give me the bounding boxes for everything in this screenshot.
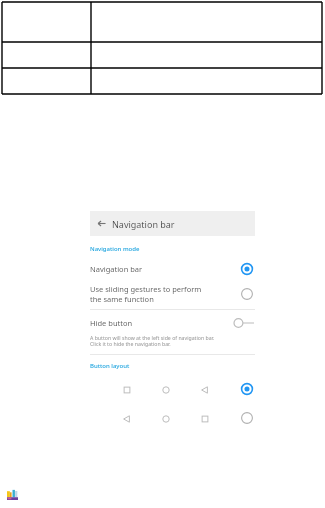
button[interactable]: Use sliding gestures to perform the same…	[90, 284, 255, 304]
button[interactable]: Back	[90, 211, 255, 236]
button[interactable]: Hide button	[90, 316, 255, 330]
button[interactable]: Back	[90, 211, 112, 236]
button[interactable]	[120, 410, 255, 426]
staticText: A button will show at the left side of n…	[90, 334, 215, 348]
button[interactable]: Navigation bar	[90, 261, 255, 277]
staticText: Hide button	[90, 318, 233, 328]
staticText: Button layout	[90, 362, 130, 370]
staticText: Navigation bar	[112, 218, 175, 230]
staticText: Use sliding gestures to perform the same…	[90, 284, 239, 304]
staticText: Navigation bar	[90, 264, 239, 274]
button[interactable]	[120, 381, 255, 397]
staticText: Navigation mode	[90, 245, 140, 253]
